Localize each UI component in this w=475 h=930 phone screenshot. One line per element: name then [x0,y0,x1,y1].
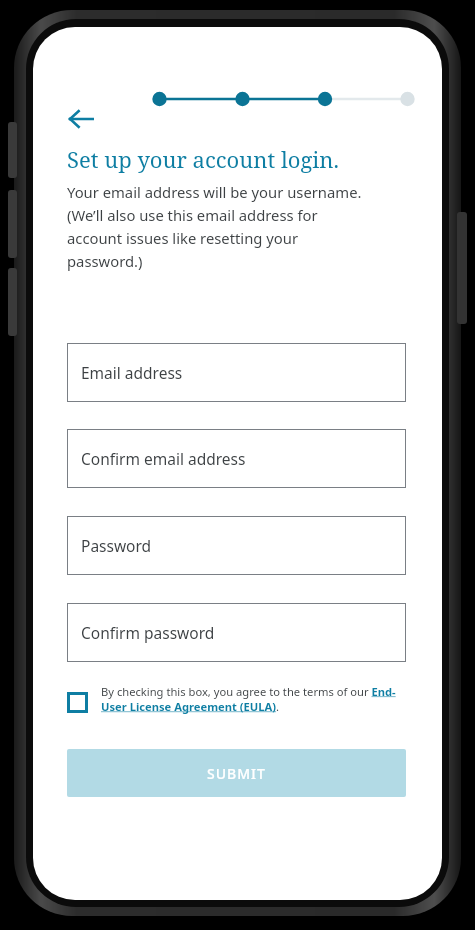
staticText: SUBMIT [207,764,266,783]
button[interactable]: Confirm password [67,603,406,662]
button[interactable]: Back [57,95,105,143]
staticText: Email address [81,362,183,383]
button[interactable]: By checking this box, you agree to the t… [67,684,406,714]
staticText: Password [81,535,152,556]
staticText: By checking this box, you agree to the t… [101,684,406,714]
button[interactable]: Password [67,516,406,575]
button[interactable]: SUBMIT [67,749,406,797]
button[interactable]: Email address [67,343,406,402]
staticText: Confirm password [81,622,215,643]
staticText: Confirm email address [81,448,246,469]
button[interactable]: Confirm email address [67,429,406,488]
staticText: Set up your account login. [67,144,340,174]
staticText: Your email address will be your username… [67,182,362,271]
